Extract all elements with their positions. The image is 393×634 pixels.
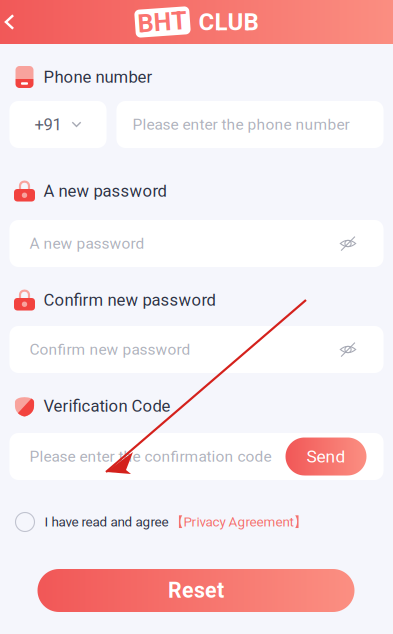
button[interactable]: Back bbox=[0, 0, 27, 44]
staticText: +91 bbox=[34, 115, 61, 134]
staticText: CLUB bbox=[198, 8, 258, 36]
staticText: 【Privacy Agreement】 bbox=[170, 513, 306, 530]
staticText: Confirm new password bbox=[29, 340, 190, 358]
staticText: Confirm new password bbox=[43, 290, 215, 310]
staticText: BHT bbox=[137, 7, 187, 37]
staticText: I have read and agree bbox=[44, 514, 168, 530]
staticText: Please enter the confirmation code bbox=[29, 447, 271, 465]
staticText: A new password bbox=[29, 234, 144, 252]
staticText: Verification Code bbox=[43, 396, 170, 416]
staticText: A new password bbox=[43, 181, 166, 201]
button[interactable]: +91 bbox=[9, 101, 106, 148]
button[interactable]: Reset bbox=[37, 569, 354, 612]
staticText: Please enter the phone number bbox=[132, 115, 349, 133]
staticText: Send bbox=[306, 446, 345, 467]
button[interactable]: Send bbox=[285, 437, 366, 475]
staticText: Reset bbox=[168, 578, 224, 603]
staticText: Phone number bbox=[43, 67, 152, 87]
button[interactable]: I have read and agree bbox=[0, 511, 393, 533]
